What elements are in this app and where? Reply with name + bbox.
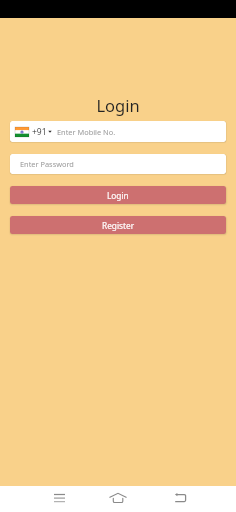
staticText: Login bbox=[0, 94, 236, 116]
button[interactable]: Login bbox=[10, 186, 226, 204]
staticText: Enter Mobile No. bbox=[57, 127, 116, 137]
staticText: Register bbox=[102, 220, 135, 231]
button[interactable]: Register bbox=[10, 216, 226, 234]
button[interactable]: Home bbox=[106, 486, 130, 512]
staticText: Login bbox=[107, 190, 129, 201]
button[interactable]: Back bbox=[168, 486, 192, 512]
button[interactable]: Recent apps bbox=[44, 486, 75, 512]
button[interactable]: +91 bbox=[10, 121, 226, 142]
staticText: Enter Password bbox=[20, 159, 74, 169]
staticText: +91 bbox=[32, 126, 47, 138]
button[interactable]: Enter Password bbox=[10, 154, 226, 174]
